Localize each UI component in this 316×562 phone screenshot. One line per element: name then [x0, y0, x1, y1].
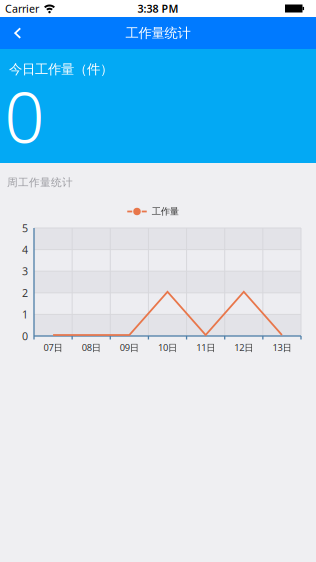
staticText: 今日工作量（件） [9, 61, 113, 77]
staticText: 工作量 [152, 206, 179, 217]
staticText: 11日 [196, 341, 215, 354]
staticText: 3:38 PM [137, 1, 178, 16]
staticText: 13日 [272, 341, 291, 354]
staticText: Carrier [5, 1, 39, 16]
staticText: 12日 [234, 341, 253, 354]
staticText: 09日 [120, 341, 139, 354]
staticText: 07日 [44, 341, 63, 354]
staticText: 0 [4, 69, 44, 162]
staticText: 周工作量统计 [7, 176, 73, 189]
staticText: 08日 [82, 341, 101, 354]
staticText: 0 [22, 329, 28, 343]
staticText: 5 [22, 221, 28, 235]
staticText: 10日 [158, 341, 177, 354]
staticText: 4 [22, 242, 28, 257]
staticText: 3 [22, 264, 28, 278]
staticText: 2 [22, 286, 28, 300]
staticText: 工作量统计 [125, 25, 190, 41]
staticText: 1 [22, 307, 28, 321]
